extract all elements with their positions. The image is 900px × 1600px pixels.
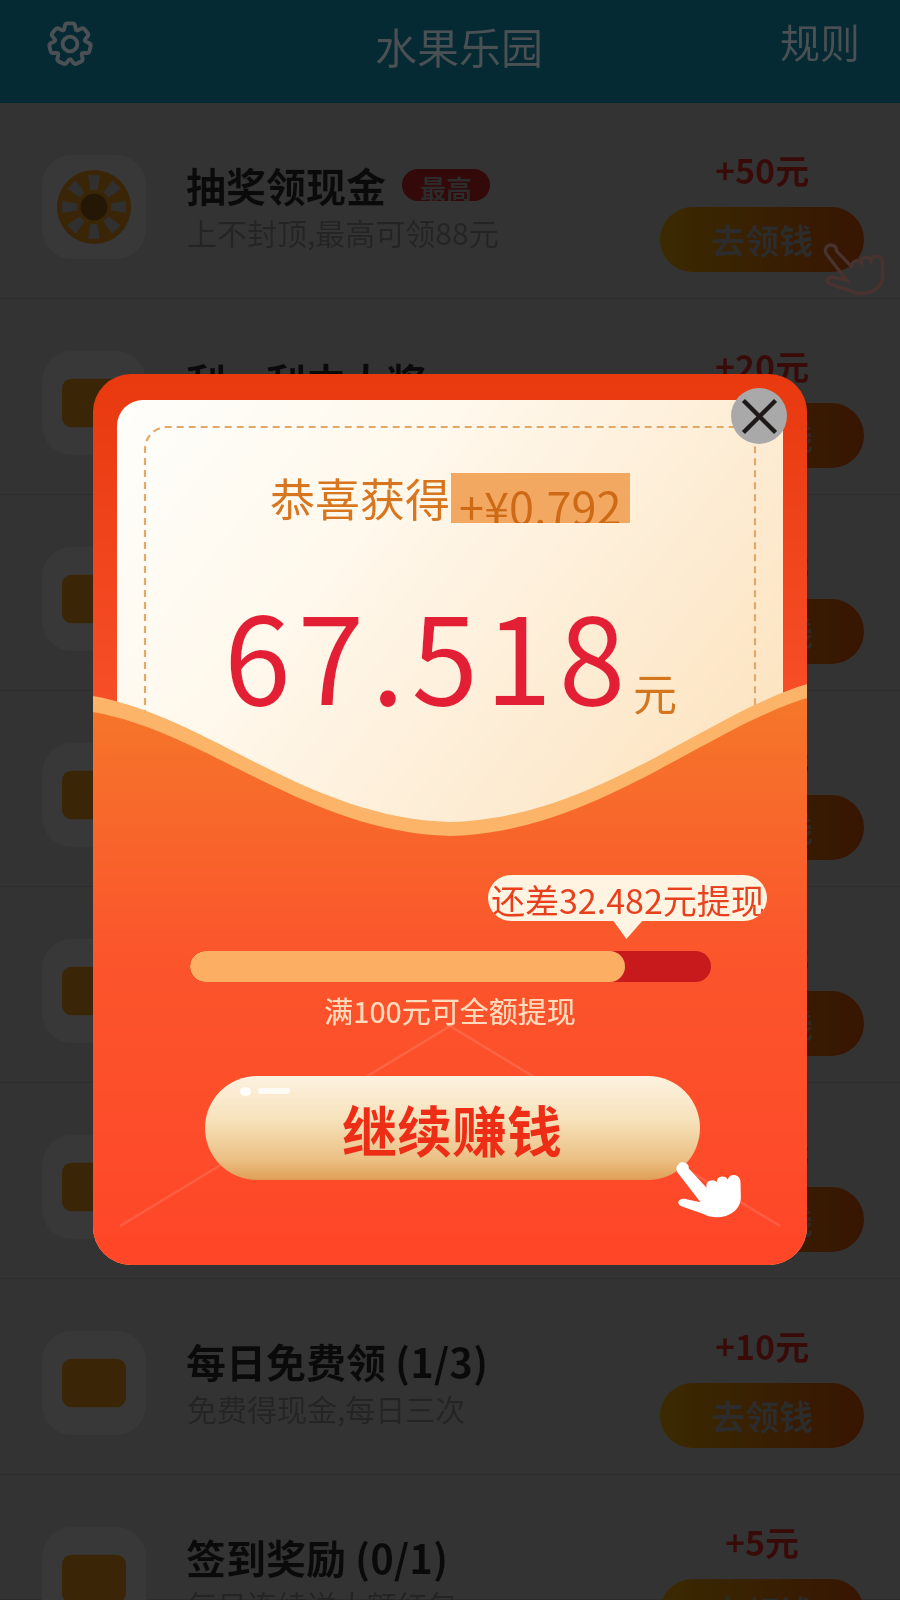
staticText: +30元: [715, 733, 810, 782]
button[interactable]: 抽奖领现金: [0, 103, 900, 299]
staticText: 67.518: [224, 566, 633, 740]
staticText: 还差32.482元提现: [491, 875, 765, 921]
staticText: 去领钱: [711, 999, 813, 1048]
button[interactable]: 去领钱: [660, 795, 864, 860]
staticText: 看视频得现金: [186, 744, 426, 802]
button[interactable]: Close: [731, 388, 787, 444]
staticText: 水果乐园: [375, 15, 544, 76]
button[interactable]: 去领钱: [660, 991, 864, 1056]
staticText: 邀请好友赚钱: [186, 940, 426, 998]
staticText: 去领钱: [711, 607, 813, 656]
staticText: +¥0.792: [459, 473, 622, 523]
button[interactable]: 签到奖励 (0/1): [0, 1475, 900, 1600]
button[interactable]: 每日免费领 (1/3): [0, 1279, 900, 1475]
staticText: 签到奖励 (0/1): [186, 1528, 448, 1586]
staticText: 去领钱: [711, 1195, 813, 1244]
staticText: +5元: [725, 1517, 800, 1566]
button[interactable]: 去领钱: [660, 1579, 864, 1600]
staticText: +20元: [715, 537, 810, 586]
staticText: +20元: [715, 341, 810, 390]
staticText: +10元: [715, 1125, 810, 1174]
staticText: +50元: [715, 145, 810, 194]
staticText: 邀请一位好友得现金: [187, 994, 457, 1037]
staticText: 免费得现金,每日三次: [187, 1386, 466, 1429]
staticText: +10元: [715, 1321, 810, 1370]
button[interactable]: 反馈有奖: [0, 495, 900, 691]
staticText: +10元: [715, 929, 810, 978]
staticText: 满100元可全额提现: [93, 989, 807, 1031]
button[interactable]: 去领钱: [660, 599, 864, 664]
button[interactable]: 邀请好友赚钱: [0, 887, 900, 1083]
staticText: 恭喜获得: [270, 465, 451, 530]
button[interactable]: Settings: [26, 0, 114, 88]
staticText: 去领钱: [711, 215, 813, 264]
staticText: 去领钱: [711, 803, 813, 852]
staticText: 每日看视频领现金: [187, 798, 427, 841]
staticText: 最高: [420, 169, 473, 201]
staticText: 每日免费领 (1/3): [186, 1332, 488, 1390]
staticText: 规则: [780, 12, 860, 70]
staticText: 去领钱: [711, 1391, 813, 1440]
staticText: 提建议得现金奖励: [187, 602, 427, 645]
staticText: 抽奖领现金: [186, 156, 386, 214]
button[interactable]: 去领钱: [660, 207, 864, 272]
button[interactable]: 继续赚钱: [205, 1076, 700, 1180]
button[interactable]: 逛一逛得现金: [0, 1083, 900, 1279]
staticText: 去领钱: [711, 1587, 813, 1600]
staticText: 继续赚钱: [342, 1088, 563, 1168]
staticText: 去领钱: [711, 411, 813, 460]
button[interactable]: 去领钱: [660, 403, 864, 468]
staticText: 刮一刮中大奖: [186, 352, 426, 410]
staticText: 每日连续送大额红包: [187, 1582, 457, 1600]
button[interactable]: 刮一刮中大奖: [0, 299, 900, 495]
button[interactable]: 去领钱: [660, 1383, 864, 1448]
button[interactable]: 看视频得现金: [0, 691, 900, 887]
staticText: 刮中最高888元: [187, 406, 387, 449]
staticText: 上不封顶,最高可领88元: [187, 210, 499, 253]
staticText: 逛一逛得现金: [186, 1136, 426, 1194]
button[interactable]: 规则: [740, 0, 900, 88]
button[interactable]: 去领钱: [660, 1187, 864, 1252]
staticText: 元: [633, 660, 677, 724]
